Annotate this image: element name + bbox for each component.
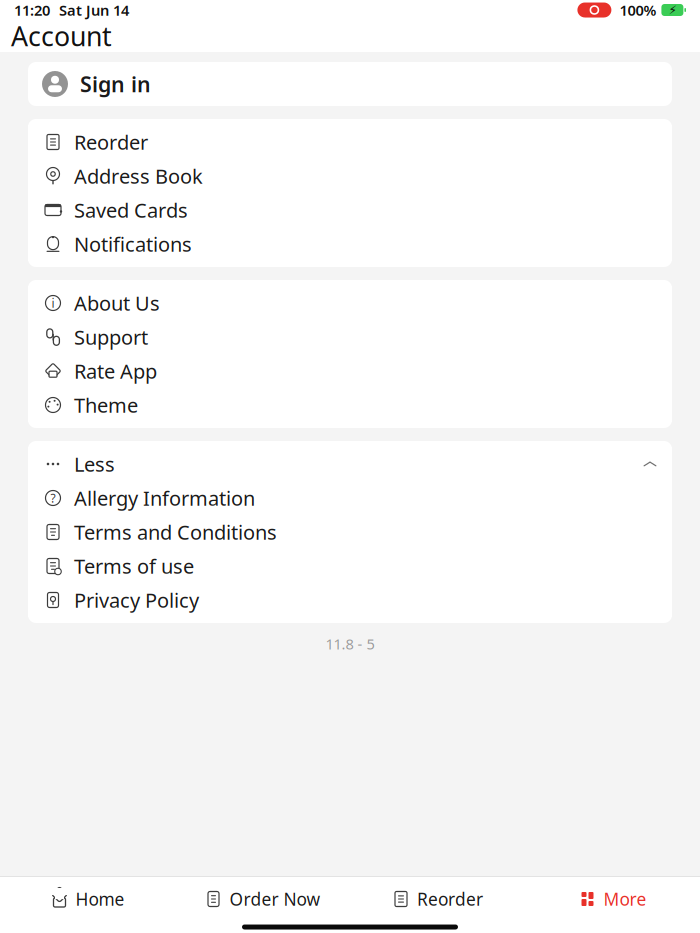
button[interactable]: Terms and Conditions bbox=[28, 515, 672, 549]
staticText: Reorder bbox=[417, 887, 483, 910]
staticText: Theme bbox=[74, 392, 138, 418]
staticText: 11.8 - 5 bbox=[325, 634, 374, 653]
button[interactable]: Address Book bbox=[28, 159, 672, 193]
button[interactable]: Rate App bbox=[28, 354, 672, 388]
staticText: Account bbox=[11, 18, 112, 54]
staticText: Sign in bbox=[80, 70, 151, 98]
button[interactable]: Sign in bbox=[28, 62, 672, 106]
staticText: Allergy Information bbox=[74, 485, 255, 511]
staticText: Privacy Policy bbox=[74, 587, 199, 613]
staticText: ⚡︎ bbox=[668, 3, 676, 17]
staticText: Sat Jun 14 bbox=[59, 0, 129, 20]
button[interactable]: Reorder bbox=[28, 125, 672, 159]
staticText: 11:20 bbox=[14, 0, 50, 20]
staticText: Less bbox=[74, 451, 115, 477]
staticText: Notifications bbox=[74, 231, 192, 257]
staticText: About Us bbox=[74, 290, 160, 316]
button[interactable]: Notifications bbox=[28, 227, 672, 261]
button[interactable]: Terms of use bbox=[28, 549, 672, 583]
button[interactable]: Less bbox=[28, 447, 672, 481]
button[interactable]: Saved Cards bbox=[28, 193, 672, 227]
staticText: i bbox=[51, 295, 54, 311]
button[interactable]: Home bbox=[0, 877, 175, 921]
staticText: Rate App bbox=[74, 358, 157, 384]
button[interactable]: i bbox=[28, 286, 672, 320]
button[interactable]: Order Now bbox=[175, 877, 350, 921]
staticText: Address Book bbox=[74, 163, 203, 189]
staticText: More bbox=[603, 887, 646, 910]
staticText: Home bbox=[75, 887, 124, 910]
staticText: 100% bbox=[619, 0, 656, 20]
staticText: Order Now bbox=[229, 887, 320, 910]
staticText: Saved Cards bbox=[74, 197, 188, 223]
button[interactable]: Reorder bbox=[350, 877, 525, 921]
staticText: Terms of use bbox=[74, 553, 194, 579]
staticText: Reorder bbox=[74, 129, 148, 155]
button[interactable]: Privacy Policy bbox=[28, 583, 672, 617]
button[interactable]: ? bbox=[28, 481, 672, 515]
button[interactable]: Support bbox=[28, 320, 672, 354]
staticText: ? bbox=[50, 490, 55, 506]
button[interactable]: More bbox=[525, 877, 700, 921]
staticText: Terms and Conditions bbox=[74, 519, 277, 545]
staticText: Support bbox=[74, 324, 148, 350]
button[interactable]: Theme bbox=[28, 388, 672, 422]
